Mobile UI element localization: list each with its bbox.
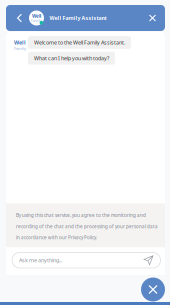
staticText: in accordance with our Privacy Policy. [16,235,97,240]
staticText: Well Family Assistant [49,14,106,21]
staticText: Family [31,19,42,23]
staticText: Well [14,39,26,46]
staticText: recording of the chat and the processing… [16,223,158,229]
staticText: Family [14,46,26,51]
staticText: Welcome to the Well Family Assistant. [34,39,125,46]
button[interactable]: Close chat [141,277,165,301]
staticText: Well [32,13,41,19]
button[interactable]: Ask me anything... [12,252,160,268]
button[interactable]: Back [14,5,25,31]
staticText: Ask me anything... [19,257,62,264]
button[interactable]: Close [146,5,159,31]
staticText: By using this chat service, you agree to… [16,212,146,218]
staticText: What can I help you with today? [34,55,109,62]
